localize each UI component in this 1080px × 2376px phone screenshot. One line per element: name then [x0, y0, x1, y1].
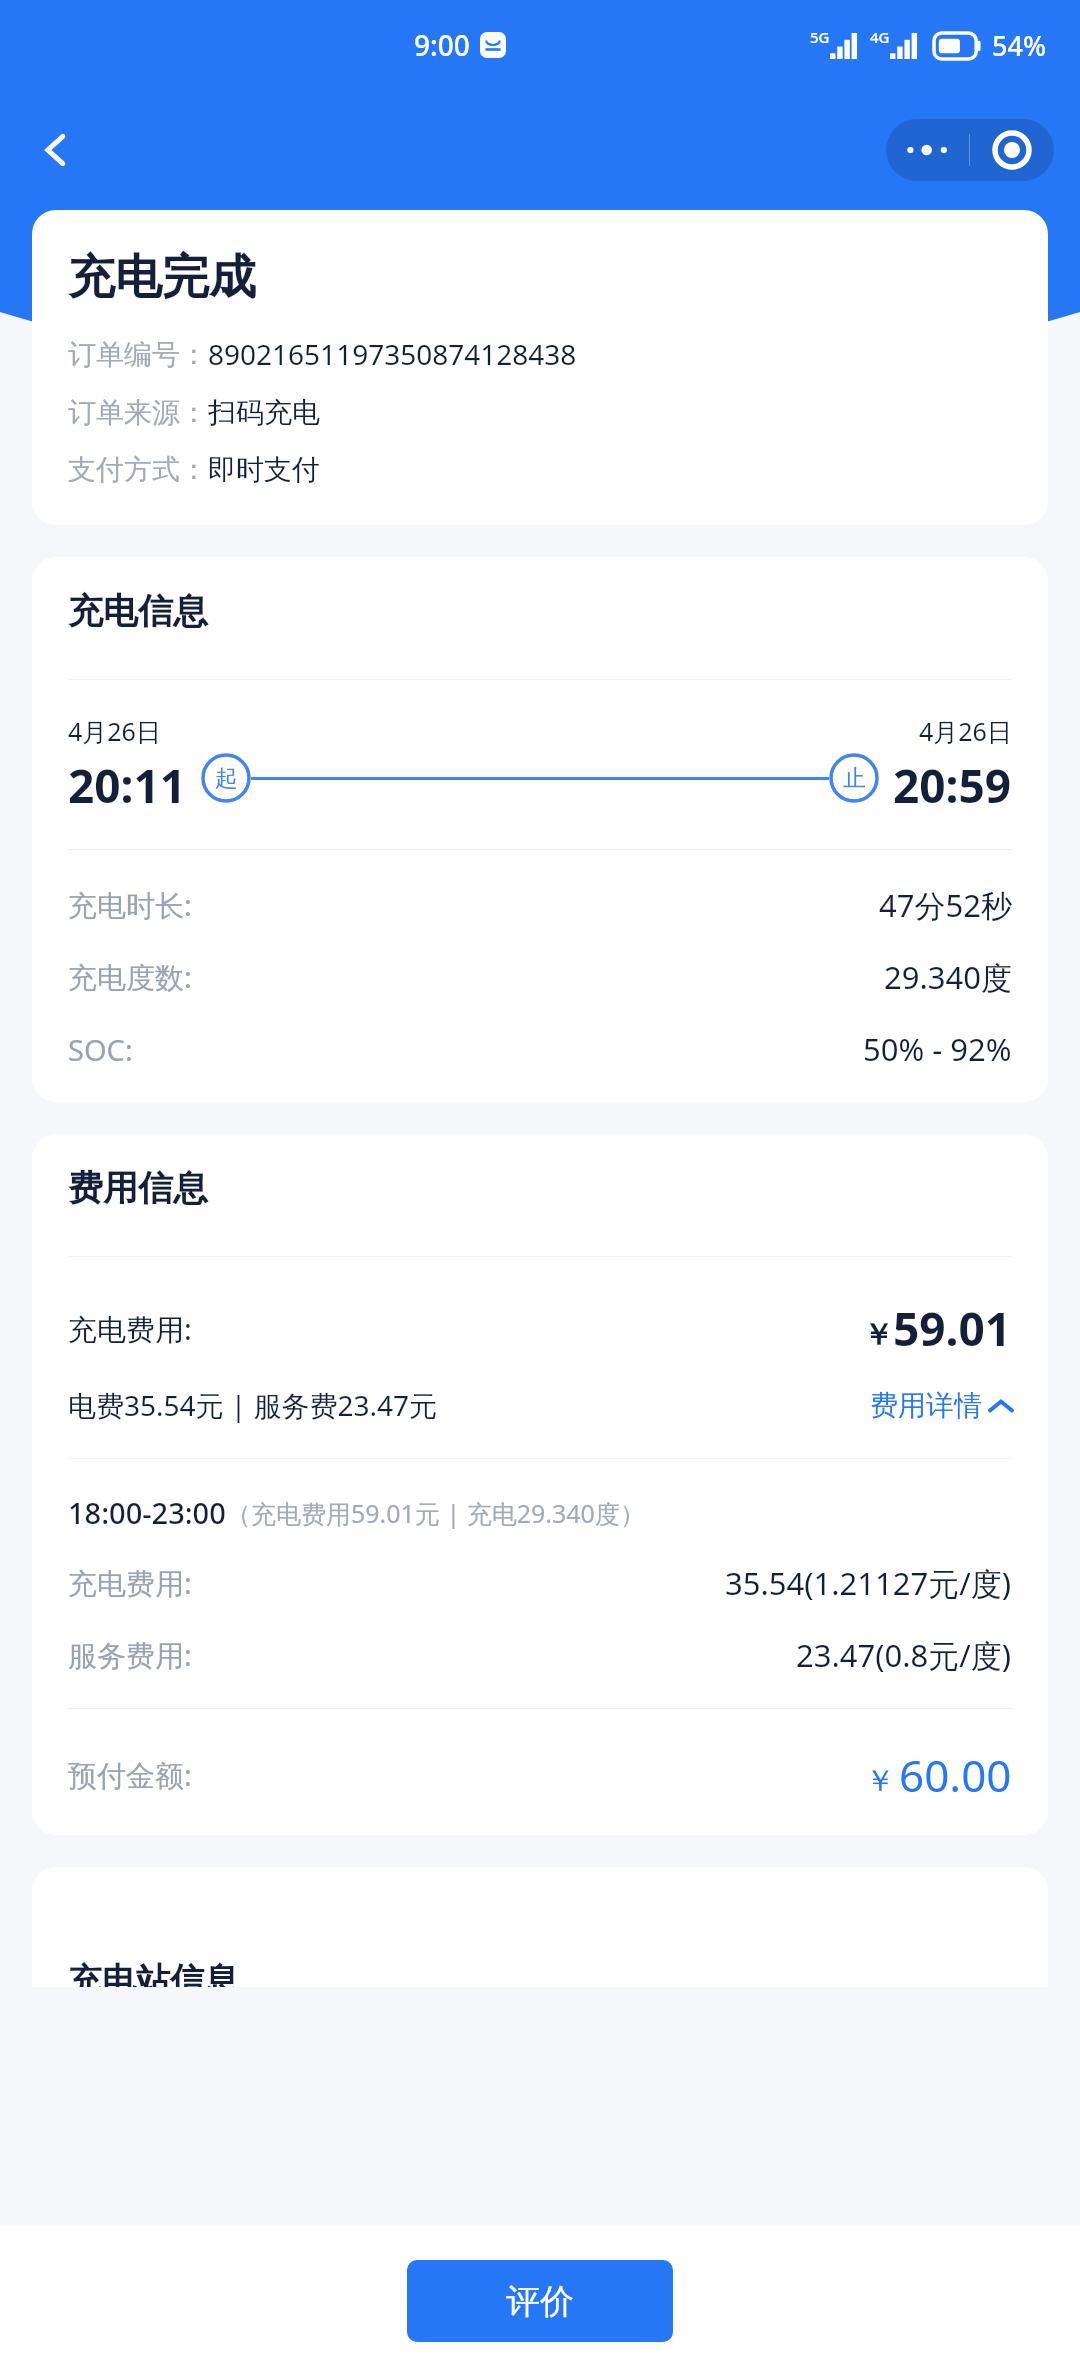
staticText: 即时支付: [208, 452, 320, 487]
staticText: 充电度数:: [68, 957, 192, 997]
staticText: ￥: [865, 1762, 895, 1800]
staticText: 评价: [506, 2280, 574, 2323]
button[interactable]: 评价: [407, 2260, 673, 2342]
staticText: 订单编号：: [68, 337, 208, 372]
staticText: 充电信息: [68, 589, 208, 633]
staticText: ￥: [863, 1316, 893, 1354]
button[interactable]: 充电站信息: [32, 1867, 1048, 1987]
staticText: 充电费用:: [68, 1563, 192, 1603]
staticText: 充电完成: [68, 248, 256, 307]
staticText: 费用详情: [870, 1388, 982, 1423]
staticText: 60.00: [899, 1745, 1012, 1805]
staticText: 服务费用:: [68, 1635, 192, 1675]
staticText: 订单来源：: [68, 395, 208, 430]
staticText: 充电站信息: [68, 1959, 238, 1987]
staticText: 29.340度: [884, 956, 1012, 998]
button[interactable]: More: [886, 119, 969, 181]
staticText: 9:00: [414, 26, 470, 64]
staticText: 59.01: [893, 1297, 1012, 1360]
staticText: 50% - 92%: [863, 1028, 1012, 1070]
staticText: 54%: [992, 27, 1046, 64]
button[interactable]: Close: [970, 119, 1054, 181]
staticText: 20:59: [893, 754, 1012, 817]
staticText: 起: [215, 764, 238, 793]
staticText: 扫码充电: [208, 395, 320, 430]
staticText: 4月26日: [919, 714, 1012, 748]
staticText: 35.54(1.21127元/度): [725, 1562, 1012, 1604]
staticText: 4月26日: [68, 714, 161, 748]
staticText: 4G: [870, 27, 890, 47]
staticText: 20:11: [68, 754, 187, 817]
button[interactable]: Back: [20, 114, 92, 186]
staticText: 支付方式：: [68, 452, 208, 487]
staticText: 止: [843, 764, 866, 793]
staticText: 充电费用:: [68, 1309, 192, 1349]
staticText: 18:00-23:00: [68, 1493, 226, 1532]
staticText: 5G: [810, 27, 830, 47]
staticText: 费用信息: [68, 1166, 208, 1210]
staticText: 预付金额:: [68, 1755, 192, 1795]
staticText: 电费35.54元 | 服务费23.47元: [68, 1386, 438, 1424]
staticText: （充电费用59.01元 | 充电29.340度）: [226, 1496, 645, 1530]
staticText: SOC:: [68, 1030, 133, 1069]
staticText: 充电时长:: [68, 885, 192, 925]
staticText: 23.47(0.8元/度): [796, 1634, 1012, 1676]
staticText: 47分52秒: [879, 884, 1012, 926]
button[interactable]: 费用详情: [870, 1388, 1012, 1423]
staticText: 89021651197350874128438: [208, 335, 577, 373]
